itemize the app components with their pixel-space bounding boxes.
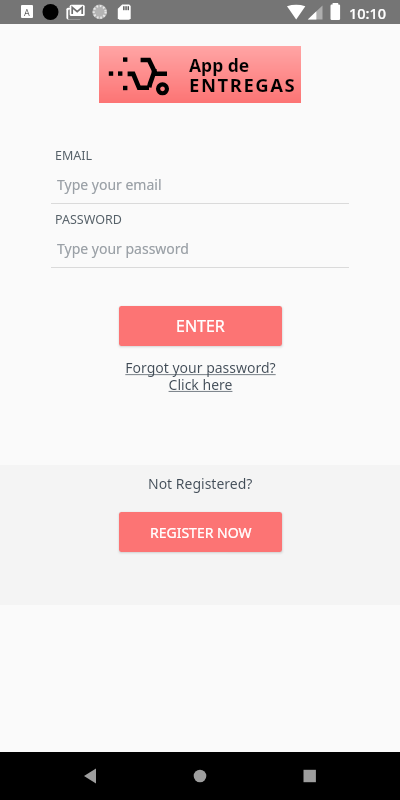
- staticText: Type your password: [57, 239, 189, 258]
- staticText: Type your email: [57, 175, 162, 194]
- staticText: Forgot your password? Click here: [125, 358, 276, 394]
- staticText: A: [24, 6, 30, 18]
- button[interactable]: Back: [66, 752, 114, 800]
- button[interactable]: REGISTER NOW: [119, 512, 282, 552]
- button[interactable]: ENTER: [119, 306, 282, 346]
- staticText: REGISTER NOW: [150, 523, 252, 542]
- staticText: ENTER: [176, 315, 225, 337]
- staticText: EMAIL: [55, 147, 93, 164]
- staticText: App de: [189, 53, 250, 77]
- staticText: 10:10: [349, 3, 387, 23]
- staticText: Not Registered?: [148, 474, 253, 493]
- staticText: PASSWORD: [55, 211, 122, 228]
- button[interactable]: Recent apps: [286, 752, 334, 800]
- staticText: ENTREGAS: [189, 72, 297, 97]
- button[interactable]: Home: [176, 752, 224, 800]
- button[interactable]: Forgot your password? Click here: [0, 358, 400, 396]
